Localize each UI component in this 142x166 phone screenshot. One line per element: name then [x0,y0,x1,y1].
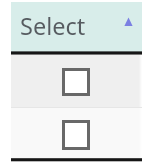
button[interactable]: Select row [62,68,90,96]
button[interactable]: Select [11,2,142,51]
button[interactable]: Sort ascending [124,17,133,27]
staticText: Select [20,10,86,42]
button[interactable] [11,108,142,158]
button[interactable]: Select row [62,120,90,150]
button[interactable] [11,55,142,107]
